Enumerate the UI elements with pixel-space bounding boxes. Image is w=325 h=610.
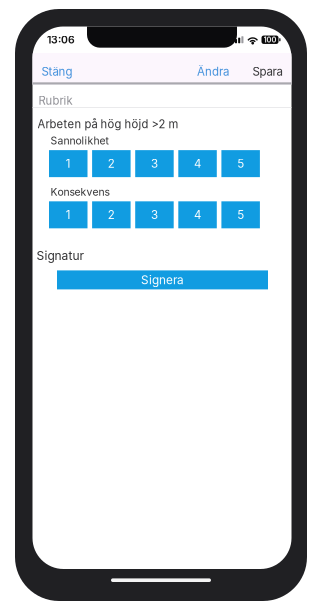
staticText: 13:06 — [47, 33, 75, 46]
staticText: Arbeten på hög höjd >2 m — [37, 117, 178, 131]
button[interactable]: 2 — [92, 150, 131, 177]
staticText: 1 — [66, 157, 71, 171]
button[interactable]: 5 — [221, 201, 260, 228]
staticText: 3 — [151, 157, 158, 171]
staticText: 1 — [66, 208, 71, 222]
staticText: Ändra — [197, 65, 229, 79]
button[interactable]: 1 — [49, 201, 87, 228]
button[interactable]: 4 — [178, 150, 217, 177]
staticText: 2 — [108, 208, 115, 222]
staticText: Stäng — [41, 65, 72, 79]
button[interactable]: 1 — [49, 150, 87, 177]
button[interactable]: 2 — [92, 201, 131, 228]
button[interactable]: Signera — [57, 270, 268, 289]
button[interactable]: Spara — [243, 53, 291, 84]
staticText: Signatur — [36, 248, 84, 263]
staticText: Spara — [252, 65, 282, 79]
staticText: Sannolikhet — [50, 134, 108, 147]
button[interactable]: Stäng — [32, 53, 81, 84]
staticText: Signera — [141, 273, 184, 287]
staticText: 2 — [108, 157, 115, 171]
staticText: 5 — [237, 157, 244, 171]
staticText: 5 — [237, 208, 244, 222]
button[interactable]: 5 — [221, 150, 260, 177]
button[interactable]: Ändra — [188, 53, 238, 84]
staticText: 4 — [194, 157, 201, 171]
button[interactable]: 4 — [178, 201, 217, 228]
staticText: Rubrik — [38, 94, 72, 107]
staticText: 3 — [151, 208, 158, 222]
button[interactable]: 3 — [135, 201, 174, 228]
staticText: Konsekvens — [50, 186, 109, 198]
button[interactable]: 3 — [135, 150, 174, 177]
staticText: 4 — [194, 208, 201, 222]
staticText: 100 — [263, 35, 276, 44]
